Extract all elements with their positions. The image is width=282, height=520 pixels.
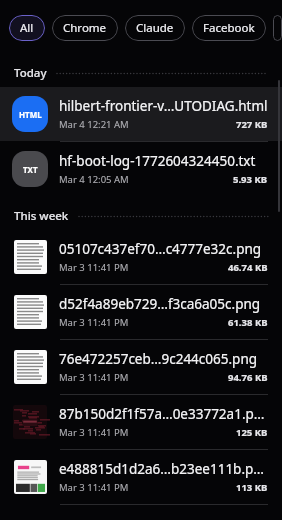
button[interactable]: All	[9, 15, 45, 41]
button[interactable]: Claude	[125, 15, 185, 41]
button[interactable]: HTML	[0, 87, 282, 141]
staticText: HTML	[19, 109, 42, 120]
button[interactable]: 05107c437ef70…c4777e32c.png	[0, 230, 282, 284]
staticText: 05107c437ef70…c4777e32c.png	[59, 240, 262, 258]
button[interactable]: d52f4a89eb729…f3ca6a05c.png	[0, 285, 282, 339]
button[interactable]: Chrome	[52, 15, 118, 41]
staticText: 125 KB	[236, 426, 268, 439]
button[interactable]: e488815d1d2a6…b23ee111b.png	[0, 450, 282, 504]
button[interactable]: 76e472257ceb…9c244c065.png	[0, 340, 282, 394]
staticText: d52f4a89eb729…f3ca6a05c.png	[59, 295, 261, 313]
staticText: TXT	[23, 164, 38, 175]
button[interactable]: 87b150d2f1f57a…0e33772a1.png	[0, 395, 282, 449]
button[interactable]: Facebook	[192, 15, 266, 41]
staticText: Mar 4 12:21 AM	[59, 118, 129, 131]
staticText: hf-boot-log-1772604324450.txt	[59, 152, 256, 170]
staticText: Chrome	[63, 20, 107, 36]
staticText: Mar 4 12:05 AM	[59, 173, 129, 186]
staticText: All	[20, 20, 34, 36]
staticText: Mar 3 11:41 PM	[59, 371, 129, 384]
staticText: e488815d1d2a6…b23ee111b.png	[59, 460, 268, 478]
staticText: 5.93 KB	[233, 173, 268, 186]
staticText: Today	[14, 65, 47, 81]
staticText: Mar 3 11:41 PM	[59, 316, 129, 329]
staticText: Claude	[136, 20, 174, 36]
staticText: Mar 3 11:41 PM	[59, 261, 129, 274]
button[interactable]: TXT	[0, 142, 282, 196]
staticText: 76e472257ceb…9c244c065.png	[59, 350, 258, 368]
staticText: 727 KB	[236, 118, 268, 131]
button[interactable]: Messe	[273, 15, 282, 41]
staticText: 113 KB	[236, 481, 268, 494]
staticText: Mar 3 11:41 PM	[59, 481, 129, 494]
staticText: Mar 3 11:41 PM	[59, 426, 129, 439]
staticText: 61.38 KB	[228, 316, 268, 329]
staticText: 87b150d2f1f57a…0e33772a1.png	[59, 405, 268, 423]
staticText: Facebook	[203, 20, 255, 36]
staticText: 94.76 KB	[228, 371, 268, 384]
staticText: 46.74 KB	[228, 261, 268, 274]
staticText: hilbert-frontier-v…UTODIAG.html	[59, 97, 268, 115]
staticText: This week	[14, 208, 69, 224]
